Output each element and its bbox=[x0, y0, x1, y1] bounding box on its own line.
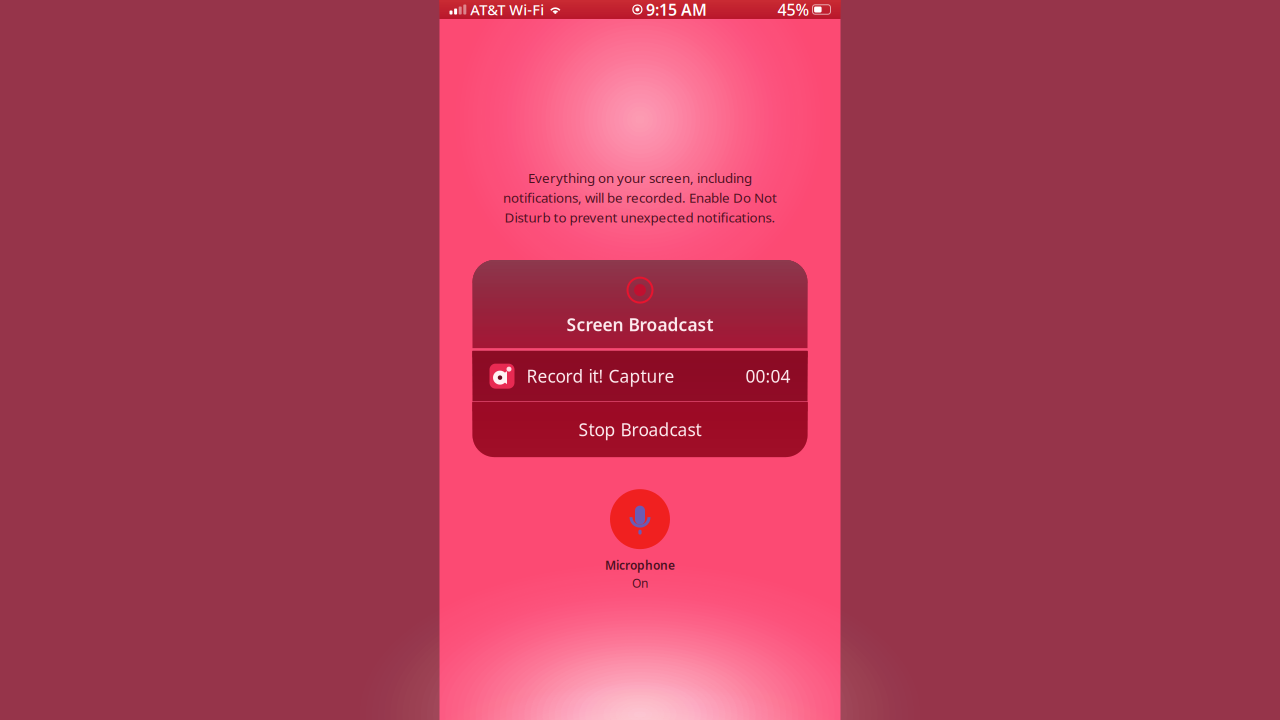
staticText: Everything on your screen, including bbox=[528, 169, 752, 187]
button[interactable]: Microphone bbox=[605, 489, 675, 591]
staticText: notifications, will be recorded. Enable … bbox=[503, 189, 777, 206]
button[interactable]: Record it! Capture bbox=[472, 351, 807, 401]
staticText: Stop Broadcast bbox=[578, 418, 701, 441]
staticText: 9:15 AM bbox=[646, 0, 707, 20]
staticText: Record it! Capture bbox=[526, 365, 674, 388]
staticText: On bbox=[632, 575, 648, 591]
staticText: Disturb to prevent unexpected notificati… bbox=[504, 208, 775, 226]
staticText: 00:04 bbox=[745, 365, 790, 388]
staticText: Screen Broadcast bbox=[566, 313, 713, 336]
button[interactable]: Stop Broadcast bbox=[472, 402, 807, 457]
staticText: AT&T Wi-Fi bbox=[466, 0, 548, 19]
staticText: 45% bbox=[777, 0, 809, 20]
staticText: Microphone bbox=[605, 557, 675, 573]
